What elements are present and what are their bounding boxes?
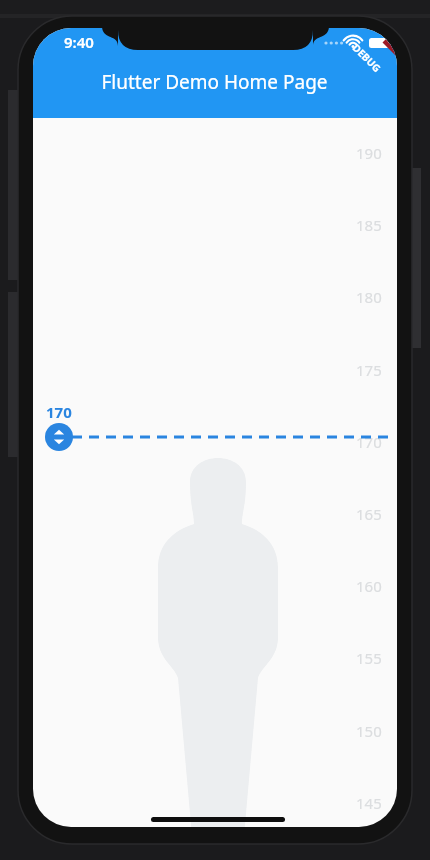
button[interactable]: Adjust height, 170 centimetres	[45, 423, 73, 451]
